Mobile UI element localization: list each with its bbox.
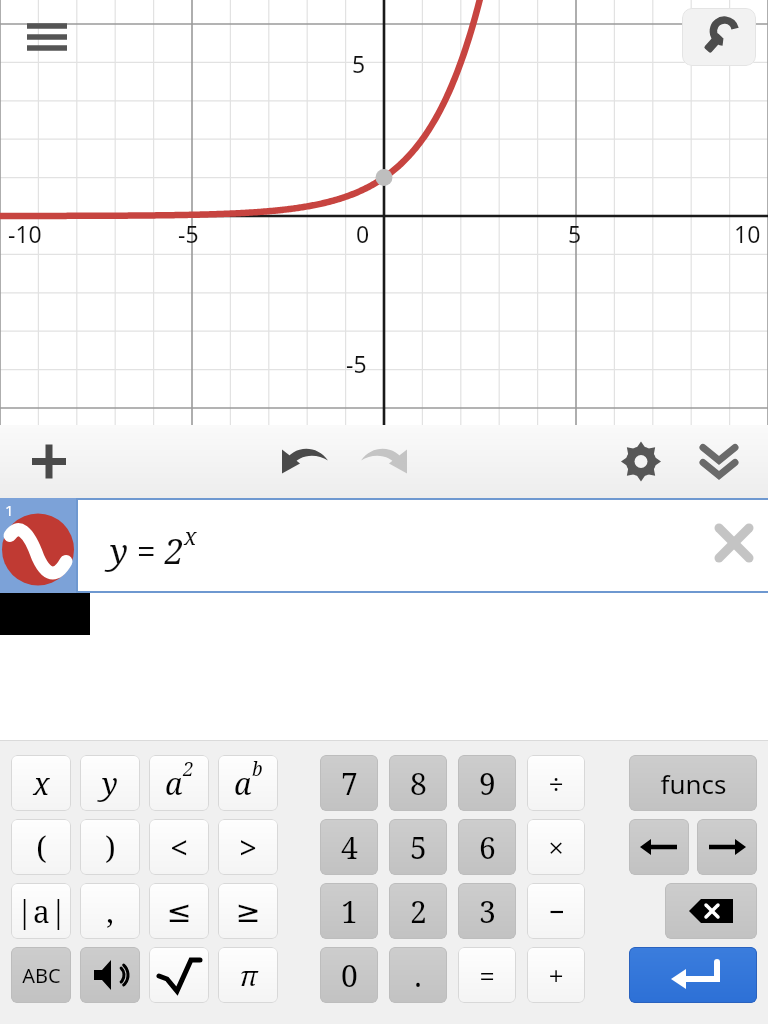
- button[interactable]: Settings: [610, 425, 672, 498]
- staticText: b: [252, 756, 263, 782]
- button[interactable]: ): [80, 819, 140, 875]
- staticText: 5: [410, 827, 427, 868]
- button[interactable]: Backspace: [665, 883, 757, 939]
- staticText: 8: [410, 763, 427, 804]
- staticText: (: [36, 827, 47, 868]
- staticText: -5: [178, 218, 199, 249]
- staticText: 5: [568, 218, 582, 249]
- staticText: 6: [479, 827, 496, 868]
- staticText: y: [102, 763, 118, 804]
- staticText: x: [184, 520, 197, 551]
- button[interactable]: 8: [389, 755, 447, 811]
- button[interactable]: ≥: [218, 883, 278, 939]
- staticText: ×: [548, 828, 564, 866]
- button[interactable]: ≤: [149, 883, 209, 939]
- staticText: ): [105, 827, 116, 868]
- button[interactable]: Square root: [149, 947, 209, 1003]
- button[interactable]: a: [149, 755, 209, 811]
- button[interactable]: Delete expression: [708, 511, 760, 563]
- button[interactable]: a: [218, 755, 278, 811]
- staticText: -5: [346, 348, 367, 379]
- button[interactable]: [76, 498, 768, 593]
- staticText: 1: [5, 500, 14, 520]
- button[interactable]: −: [527, 883, 585, 939]
- staticText: 9: [479, 763, 496, 804]
- button[interactable]: π: [218, 947, 278, 1003]
- staticText: x: [33, 763, 50, 804]
- button[interactable]: Collapse: [688, 425, 750, 498]
- button[interactable]: 3: [458, 883, 516, 939]
- staticText: ,: [106, 891, 114, 932]
- staticText: a: [165, 763, 183, 804]
- staticText: 3: [479, 891, 496, 932]
- staticText: 2: [410, 891, 427, 932]
- staticText: >: [239, 827, 257, 868]
- staticText: funcs: [660, 766, 727, 801]
- button[interactable]: Enter: [629, 947, 757, 1003]
- button[interactable]: =: [458, 947, 516, 1003]
- button[interactable]: y: [80, 755, 140, 811]
- staticText: ≥: [235, 894, 261, 929]
- button[interactable]: ABC: [11, 947, 71, 1003]
- staticText: |a|: [16, 891, 67, 932]
- staticText: ≤: [166, 894, 192, 929]
- staticText: 7: [341, 763, 358, 804]
- button[interactable]: <: [149, 819, 209, 875]
- button[interactable]: +: [527, 947, 585, 1003]
- button[interactable]: Move left: [629, 819, 689, 875]
- staticText: π: [239, 956, 258, 994]
- staticText: ABC: [22, 962, 61, 989]
- staticText: a: [234, 763, 252, 804]
- staticText: =: [479, 956, 495, 994]
- button[interactable]: >: [218, 819, 278, 875]
- staticText: 0: [341, 955, 358, 996]
- button[interactable]: 5: [389, 819, 447, 875]
- button[interactable]: Audio trace: [80, 947, 140, 1003]
- staticText: 10: [734, 218, 761, 249]
- button[interactable]: 1: [0, 498, 76, 593]
- button[interactable]: funcs: [629, 755, 757, 811]
- button[interactable]: 9: [458, 755, 516, 811]
- button[interactable]: 4: [320, 819, 378, 875]
- staticText: <: [170, 827, 188, 868]
- staticText: 1: [341, 891, 358, 932]
- button[interactable]: Graph settings: [682, 8, 756, 66]
- button[interactable]: Move right: [697, 819, 757, 875]
- button[interactable]: 6: [458, 819, 516, 875]
- button[interactable]: Undo: [275, 425, 337, 498]
- button[interactable]: 7: [320, 755, 378, 811]
- staticText: 5: [352, 48, 366, 79]
- button[interactable]: Menu: [18, 14, 76, 60]
- button[interactable]: 0: [320, 947, 378, 1003]
- staticText: ÷: [548, 764, 564, 802]
- button[interactable]: ×: [527, 819, 585, 875]
- staticText: +: [548, 956, 564, 994]
- staticText: y = 2: [110, 528, 184, 574]
- staticText: 4: [341, 827, 358, 868]
- button[interactable]: ÷: [527, 755, 585, 811]
- staticText: 0: [356, 218, 370, 249]
- button[interactable]: Redo: [352, 425, 414, 498]
- button[interactable]: ,: [80, 883, 140, 939]
- button[interactable]: x: [11, 755, 71, 811]
- button[interactable]: |a|: [11, 883, 71, 939]
- button[interactable]: Add expression: [18, 425, 80, 498]
- button[interactable]: 1: [320, 883, 378, 939]
- button[interactable]: (: [11, 819, 71, 875]
- button[interactable]: .: [389, 947, 447, 1003]
- staticText: −: [548, 892, 565, 930]
- staticText: 2: [183, 756, 194, 782]
- button[interactable]: 2: [389, 883, 447, 939]
- staticText: .: [414, 955, 422, 996]
- staticText: -10: [8, 218, 42, 249]
